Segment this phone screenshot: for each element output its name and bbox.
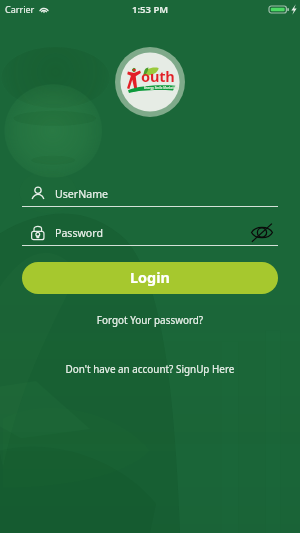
button[interactable]: Forgot Your password? [0, 313, 300, 326]
button[interactable]: Don't have an account? SignUp Here [0, 362, 300, 375]
staticText: 1:53 PM [132, 3, 169, 16]
staticText: Login [130, 268, 170, 288]
button[interactable]: UserName [22, 183, 278, 207]
staticText: Password [55, 226, 103, 240]
staticText: UserName [55, 187, 109, 201]
button[interactable]: Show password [251, 224, 273, 241]
staticText: Energy Smile Marketing [144, 86, 179, 90]
button[interactable]: Login [22, 262, 278, 294]
staticText: outh [141, 66, 175, 86]
button[interactable]: Password [22, 222, 278, 246]
staticText: Carrier [5, 3, 35, 15]
